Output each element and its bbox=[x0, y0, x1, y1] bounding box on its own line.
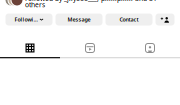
button[interactable]: Reels bbox=[60, 41, 120, 55]
button[interactable]: Followi… bbox=[5, 13, 52, 25]
button[interactable]: Tagged bbox=[120, 41, 180, 55]
staticText: Followi… bbox=[14, 16, 37, 23]
button[interactable]: Contact bbox=[105, 13, 152, 25]
staticText: Message bbox=[67, 16, 90, 23]
button[interactable]: Message bbox=[55, 13, 102, 25]
button[interactable]: Posts bbox=[0, 41, 60, 55]
button[interactable]: Discover people bbox=[155, 13, 174, 25]
staticText: Contact bbox=[119, 16, 138, 23]
staticText: Followed by _jxyooo___, pxxxpxxx and 81 bbox=[25, 0, 157, 3]
staticText: others bbox=[25, 0, 45, 9]
